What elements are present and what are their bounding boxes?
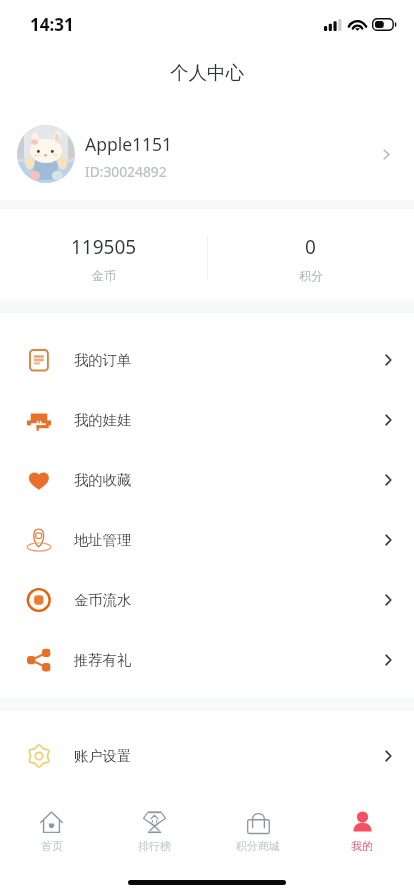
button[interactable]: 我的订单	[0, 330, 414, 390]
staticText: 0	[305, 234, 316, 260]
staticText: 首页	[41, 839, 63, 853]
staticText: 积分商城	[236, 839, 280, 853]
button[interactable]: 119505	[0, 209, 207, 283]
staticText: 排行榜	[138, 839, 171, 853]
staticText: 我的订单	[74, 351, 132, 369]
button[interactable]: 金币流水	[0, 570, 414, 630]
button[interactable]: 我的娃娃	[0, 390, 414, 450]
staticText: 积分	[299, 268, 323, 283]
staticText: 金币	[92, 268, 116, 283]
button[interactable]: 我的	[310, 800, 414, 853]
staticText: Apple1151	[85, 132, 173, 156]
button[interactable]: 0	[207, 209, 414, 283]
button[interactable]: 我的收藏	[0, 450, 414, 510]
staticText: 14:31	[30, 13, 74, 36]
staticText: 账户设置	[74, 747, 132, 765]
button[interactable]: Apple1151	[0, 100, 414, 200]
button[interactable]: 排行榜	[103, 800, 206, 853]
staticText: 我的娃娃	[74, 411, 132, 429]
staticText: 我的收藏	[74, 471, 132, 489]
staticText: 119505	[71, 234, 137, 260]
staticText: 金币流水	[74, 591, 132, 609]
button[interactable]: 首页	[0, 800, 103, 853]
staticText: 推荐有礼	[74, 651, 132, 669]
button[interactable]: 地址管理	[0, 510, 414, 570]
staticText: 地址管理	[74, 531, 132, 549]
button[interactable]: 推荐有礼	[0, 630, 414, 690]
button[interactable]: 积分商城	[206, 800, 310, 853]
staticText: 我的	[351, 839, 373, 853]
staticText: ID:30024892	[85, 162, 167, 181]
staticText: 个人中心	[170, 61, 244, 84]
button[interactable]: 账户设置	[0, 726, 414, 786]
